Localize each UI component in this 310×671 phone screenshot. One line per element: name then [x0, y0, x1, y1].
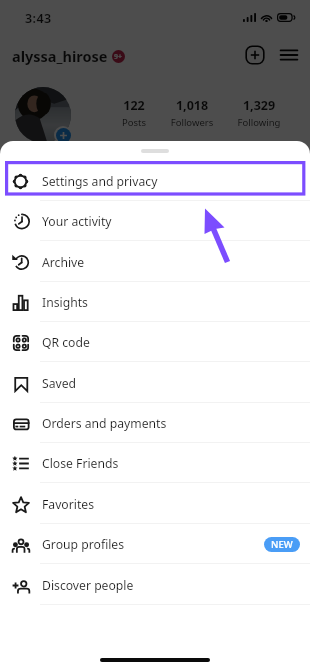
staticText: Settings and privacy: [42, 173, 158, 190]
staticText: Favorites: [42, 496, 95, 513]
button[interactable]: Insights: [0, 282, 310, 322]
button[interactable]: Close Friends: [0, 443, 310, 483]
staticText: Archive: [42, 254, 85, 271]
staticText: 1,329: [229, 97, 289, 114]
staticText: Saved: [42, 375, 77, 392]
staticText: Posts: [104, 116, 164, 129]
button[interactable]: Orders and payments: [0, 403, 310, 443]
staticText: Close Friends: [42, 455, 119, 472]
staticText: 122: [104, 97, 164, 114]
staticText: 9+: [114, 52, 123, 62]
staticText: Insights: [42, 294, 88, 311]
staticText: Group profiles: [42, 536, 125, 553]
staticText: alyssa_hirose: [12, 46, 108, 66]
staticText: Followers: [162, 116, 222, 129]
button[interactable]: Group profiles: [0, 524, 310, 564]
staticText: Discover people: [42, 577, 134, 594]
staticText: Orders and payments: [42, 415, 167, 432]
button[interactable]: Create: [245, 45, 265, 65]
button[interactable]: Discover people: [0, 565, 310, 605]
button[interactable]: Saved: [0, 363, 310, 403]
staticText: 3:43: [25, 10, 52, 27]
staticText: Your activity: [42, 213, 112, 230]
button[interactable]: Archive: [0, 242, 310, 282]
button[interactable]: Settings and privacy: [0, 161, 310, 201]
staticText: Following: [229, 116, 289, 129]
staticText: QR code: [42, 334, 90, 351]
staticText: 1,018: [162, 97, 222, 114]
button[interactable]: Favorites: [0, 484, 310, 524]
button[interactable]: Menu: [279, 45, 299, 65]
button[interactable]: Your activity: [0, 201, 310, 241]
staticText: NEW: [271, 538, 293, 551]
button[interactable]: QR code: [0, 322, 310, 362]
